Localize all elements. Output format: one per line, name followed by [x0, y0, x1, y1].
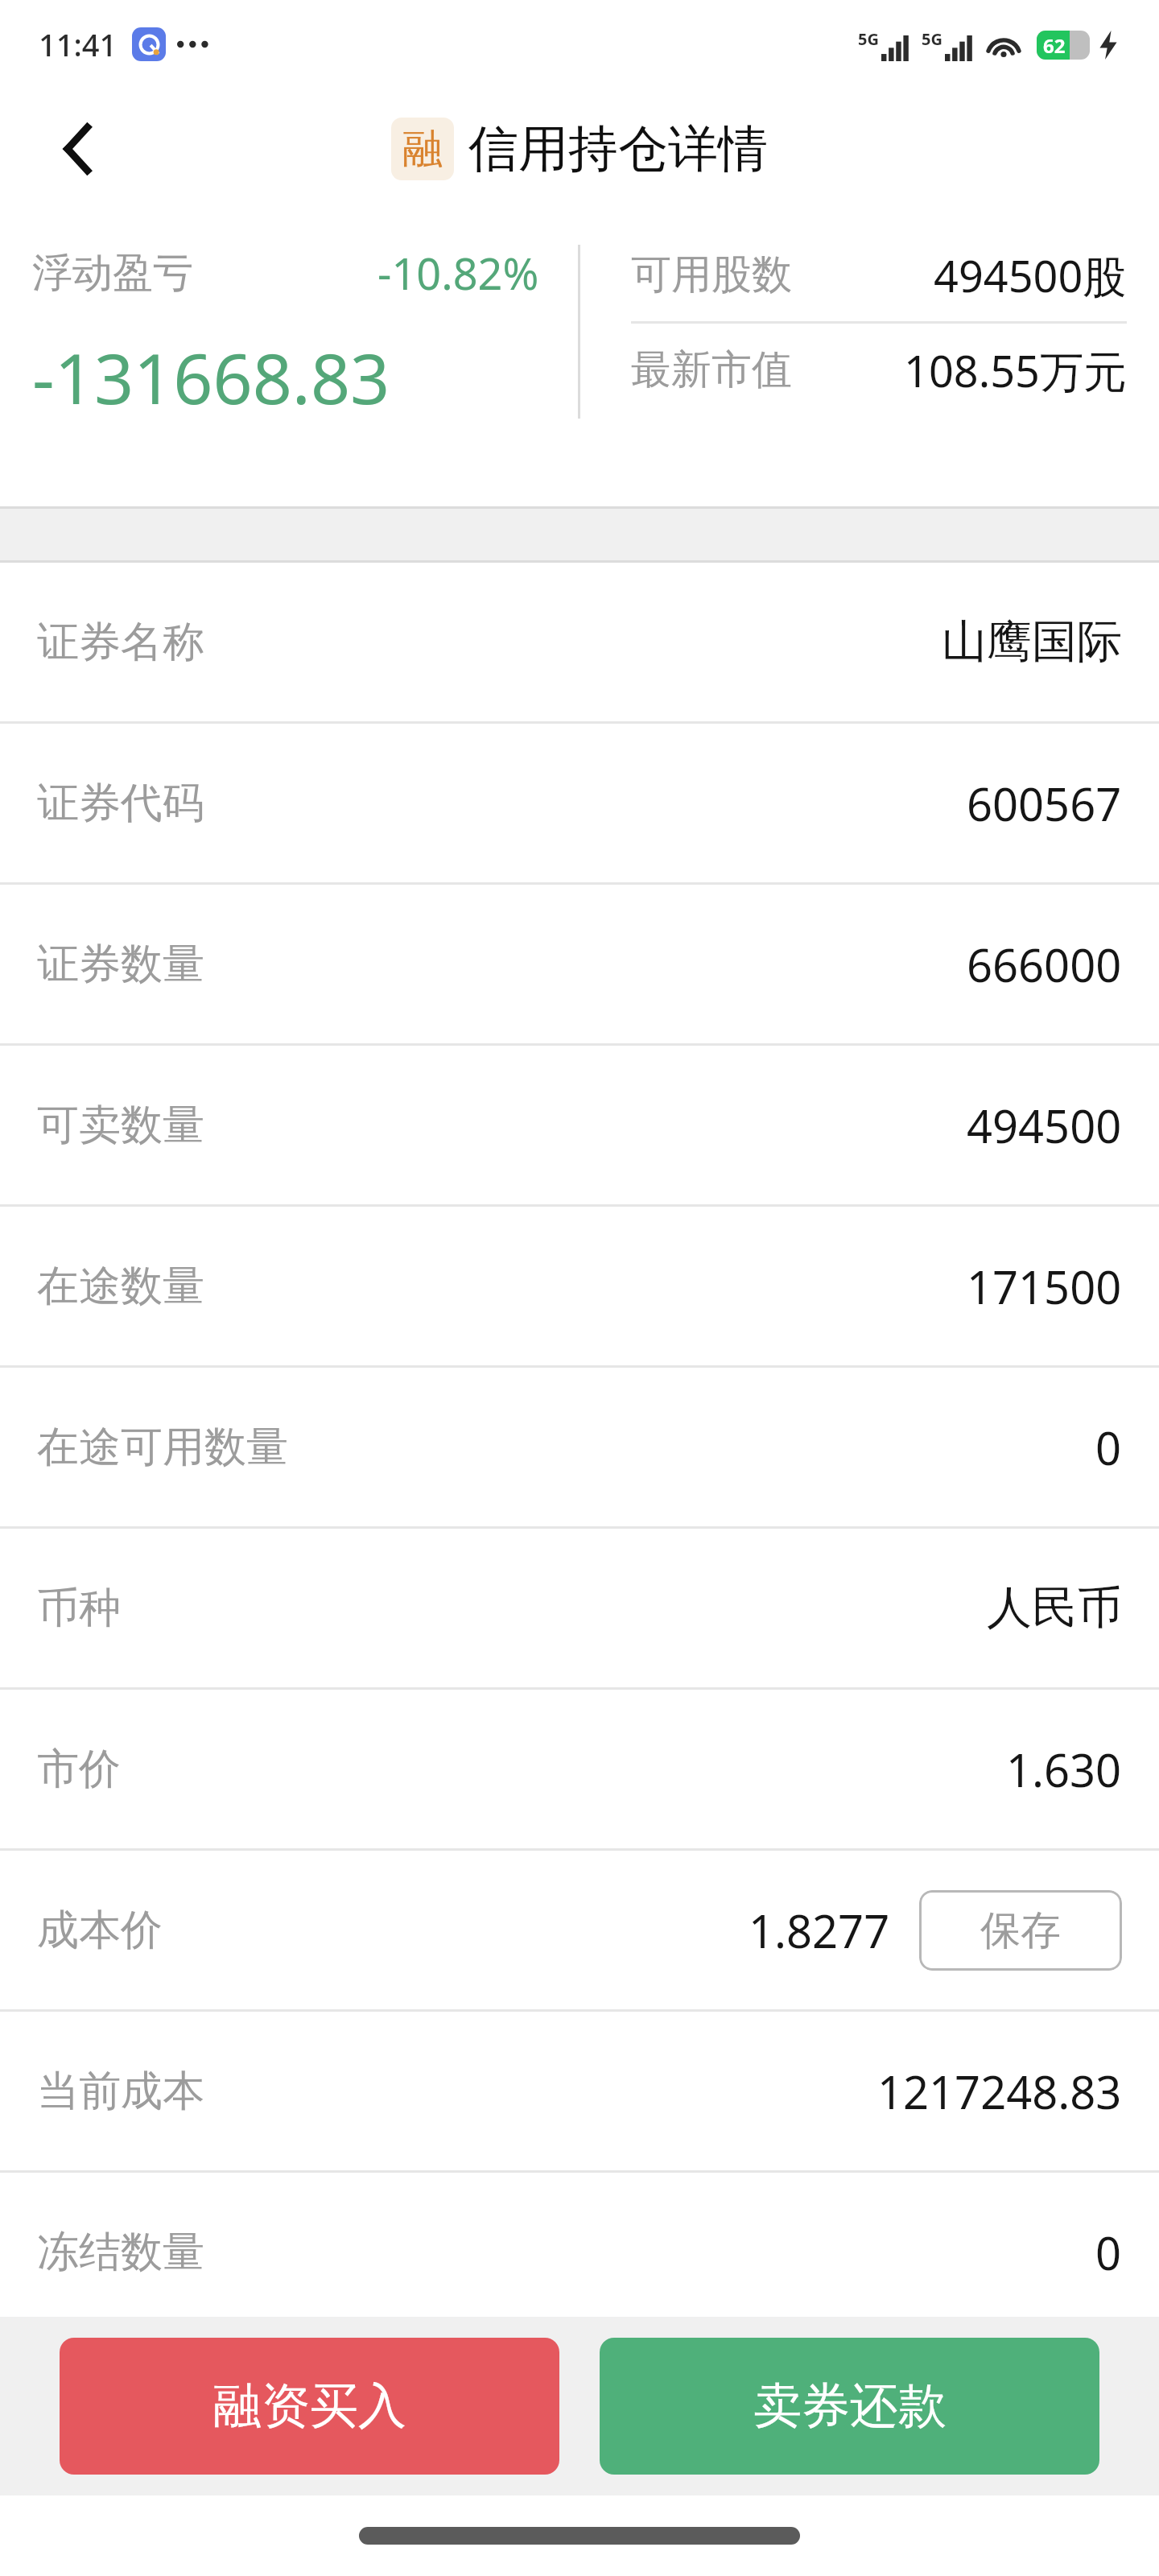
- button[interactable]: 可卖数量: [0, 1046, 1159, 1204]
- staticText: 0: [1095, 1417, 1122, 1478]
- staticText: 最新市值: [631, 345, 792, 395]
- staticText: 可卖数量: [37, 1099, 204, 1152]
- staticText: 108.55万元: [904, 341, 1127, 400]
- staticText: -131668.83: [32, 330, 390, 424]
- staticText: 冻结数量: [37, 2226, 204, 2279]
- staticText: -10.82%: [377, 243, 539, 303]
- staticText: 融资买入: [213, 2376, 406, 2437]
- staticText: 当前成本: [37, 2065, 204, 2118]
- staticText: 成本价: [37, 1904, 163, 1957]
- button[interactable]: 币种: [0, 1529, 1159, 1687]
- button[interactable]: 卖券还款: [600, 2338, 1099, 2475]
- staticText: 市价: [37, 1743, 121, 1796]
- button[interactable]: 在途数量: [0, 1207, 1159, 1365]
- staticText: 信用持仓详情: [468, 118, 768, 180]
- button[interactable]: 融资买入: [60, 2338, 559, 2475]
- button[interactable]: 在途可用数量: [0, 1368, 1159, 1526]
- button[interactable]: 成本价: [0, 1851, 1159, 2009]
- staticText: 5G: [858, 28, 879, 50]
- staticText: 171500: [967, 1256, 1122, 1317]
- staticText: 62: [1043, 32, 1066, 59]
- staticText: 1.630: [1006, 1739, 1122, 1800]
- staticText: 融: [402, 124, 443, 175]
- staticText: 证券数量: [37, 938, 204, 991]
- button[interactable]: 市价: [0, 1690, 1159, 1848]
- staticText: 在途可用数量: [37, 1421, 288, 1474]
- staticText: 卖券还款: [753, 2376, 947, 2437]
- staticText: 666000: [967, 934, 1122, 995]
- button[interactable]: 冻结数量: [0, 2173, 1159, 2331]
- staticText: 1.8277: [749, 1900, 890, 1961]
- staticText: 币种: [37, 1582, 121, 1635]
- staticText: 浮动盈亏: [32, 248, 193, 299]
- staticText: 0: [1095, 2222, 1122, 2283]
- staticText: 保存: [980, 1905, 1061, 1956]
- button[interactable]: 当前成本: [0, 2012, 1159, 2170]
- staticText: 可用股数: [631, 250, 792, 300]
- staticText: 494500股: [934, 246, 1127, 305]
- staticText: 证券名称: [37, 616, 204, 669]
- staticText: 山鹰国际: [942, 613, 1122, 671]
- button[interactable]: 证券数量: [0, 885, 1159, 1043]
- staticText: 人民币: [987, 1579, 1122, 1637]
- button[interactable]: 证券名称: [0, 563, 1159, 721]
- button[interactable]: Back: [35, 107, 119, 191]
- staticText: 在途数量: [37, 1260, 204, 1313]
- staticText: 11:41: [39, 23, 118, 65]
- staticText: 1217248.83: [877, 2061, 1122, 2122]
- staticText: 证券代码: [37, 777, 204, 830]
- staticText: 5G: [922, 28, 942, 50]
- button[interactable]: 保存: [919, 1890, 1122, 1971]
- staticText: 600567: [967, 773, 1122, 834]
- button[interactable]: 证券代码: [0, 724, 1159, 882]
- staticText: 494500: [967, 1095, 1122, 1156]
